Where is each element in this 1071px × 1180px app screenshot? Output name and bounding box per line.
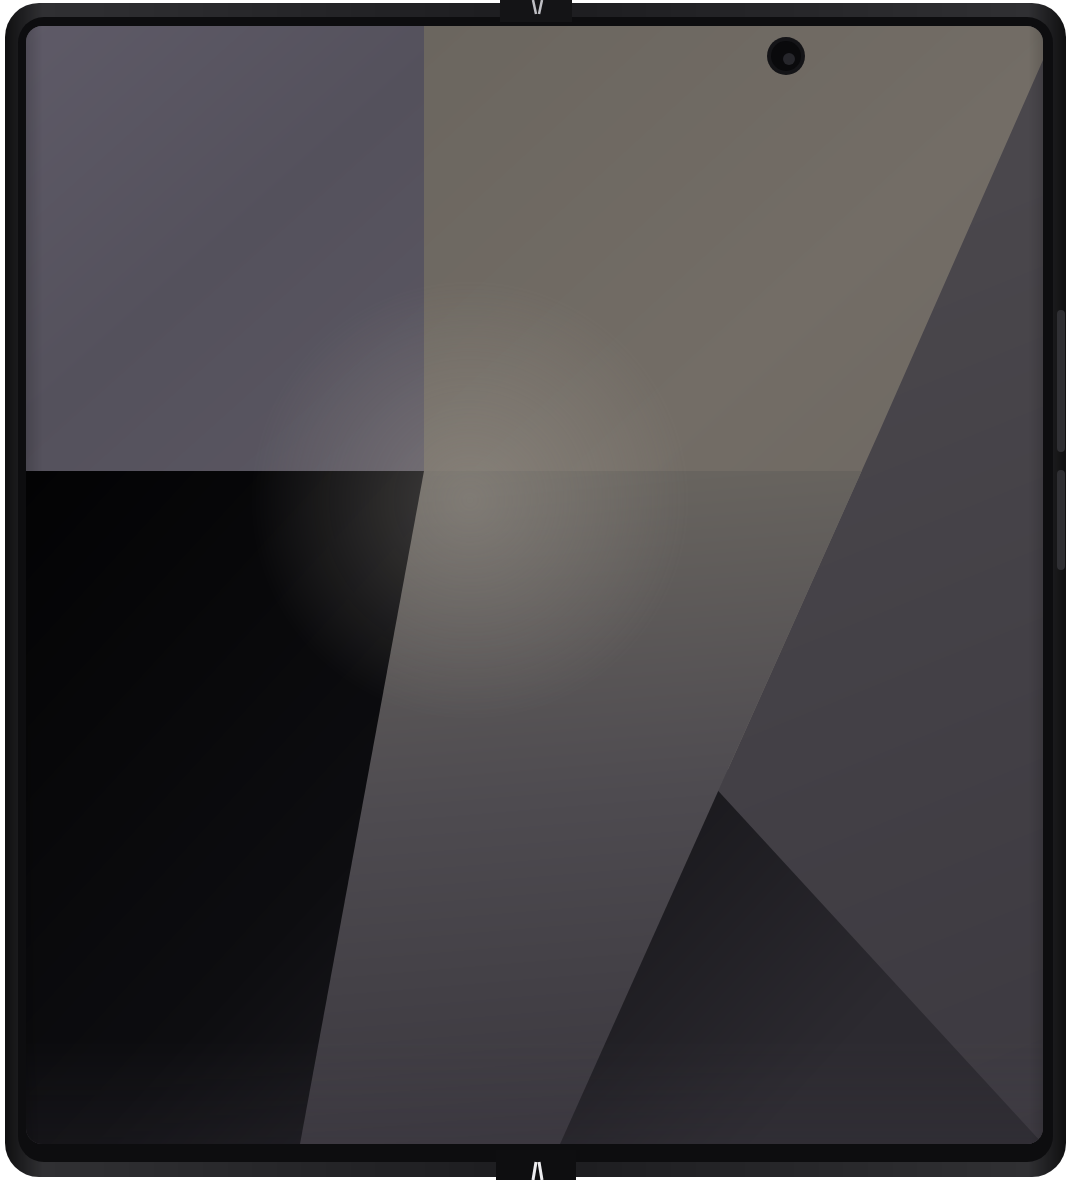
button[interactable]: Front camera	[764, 34, 808, 78]
button[interactable]: Power button	[1046, 308, 1064, 454]
button[interactable]: Volume button	[1046, 466, 1064, 572]
button[interactable]: Display	[26, 26, 1043, 1144]
